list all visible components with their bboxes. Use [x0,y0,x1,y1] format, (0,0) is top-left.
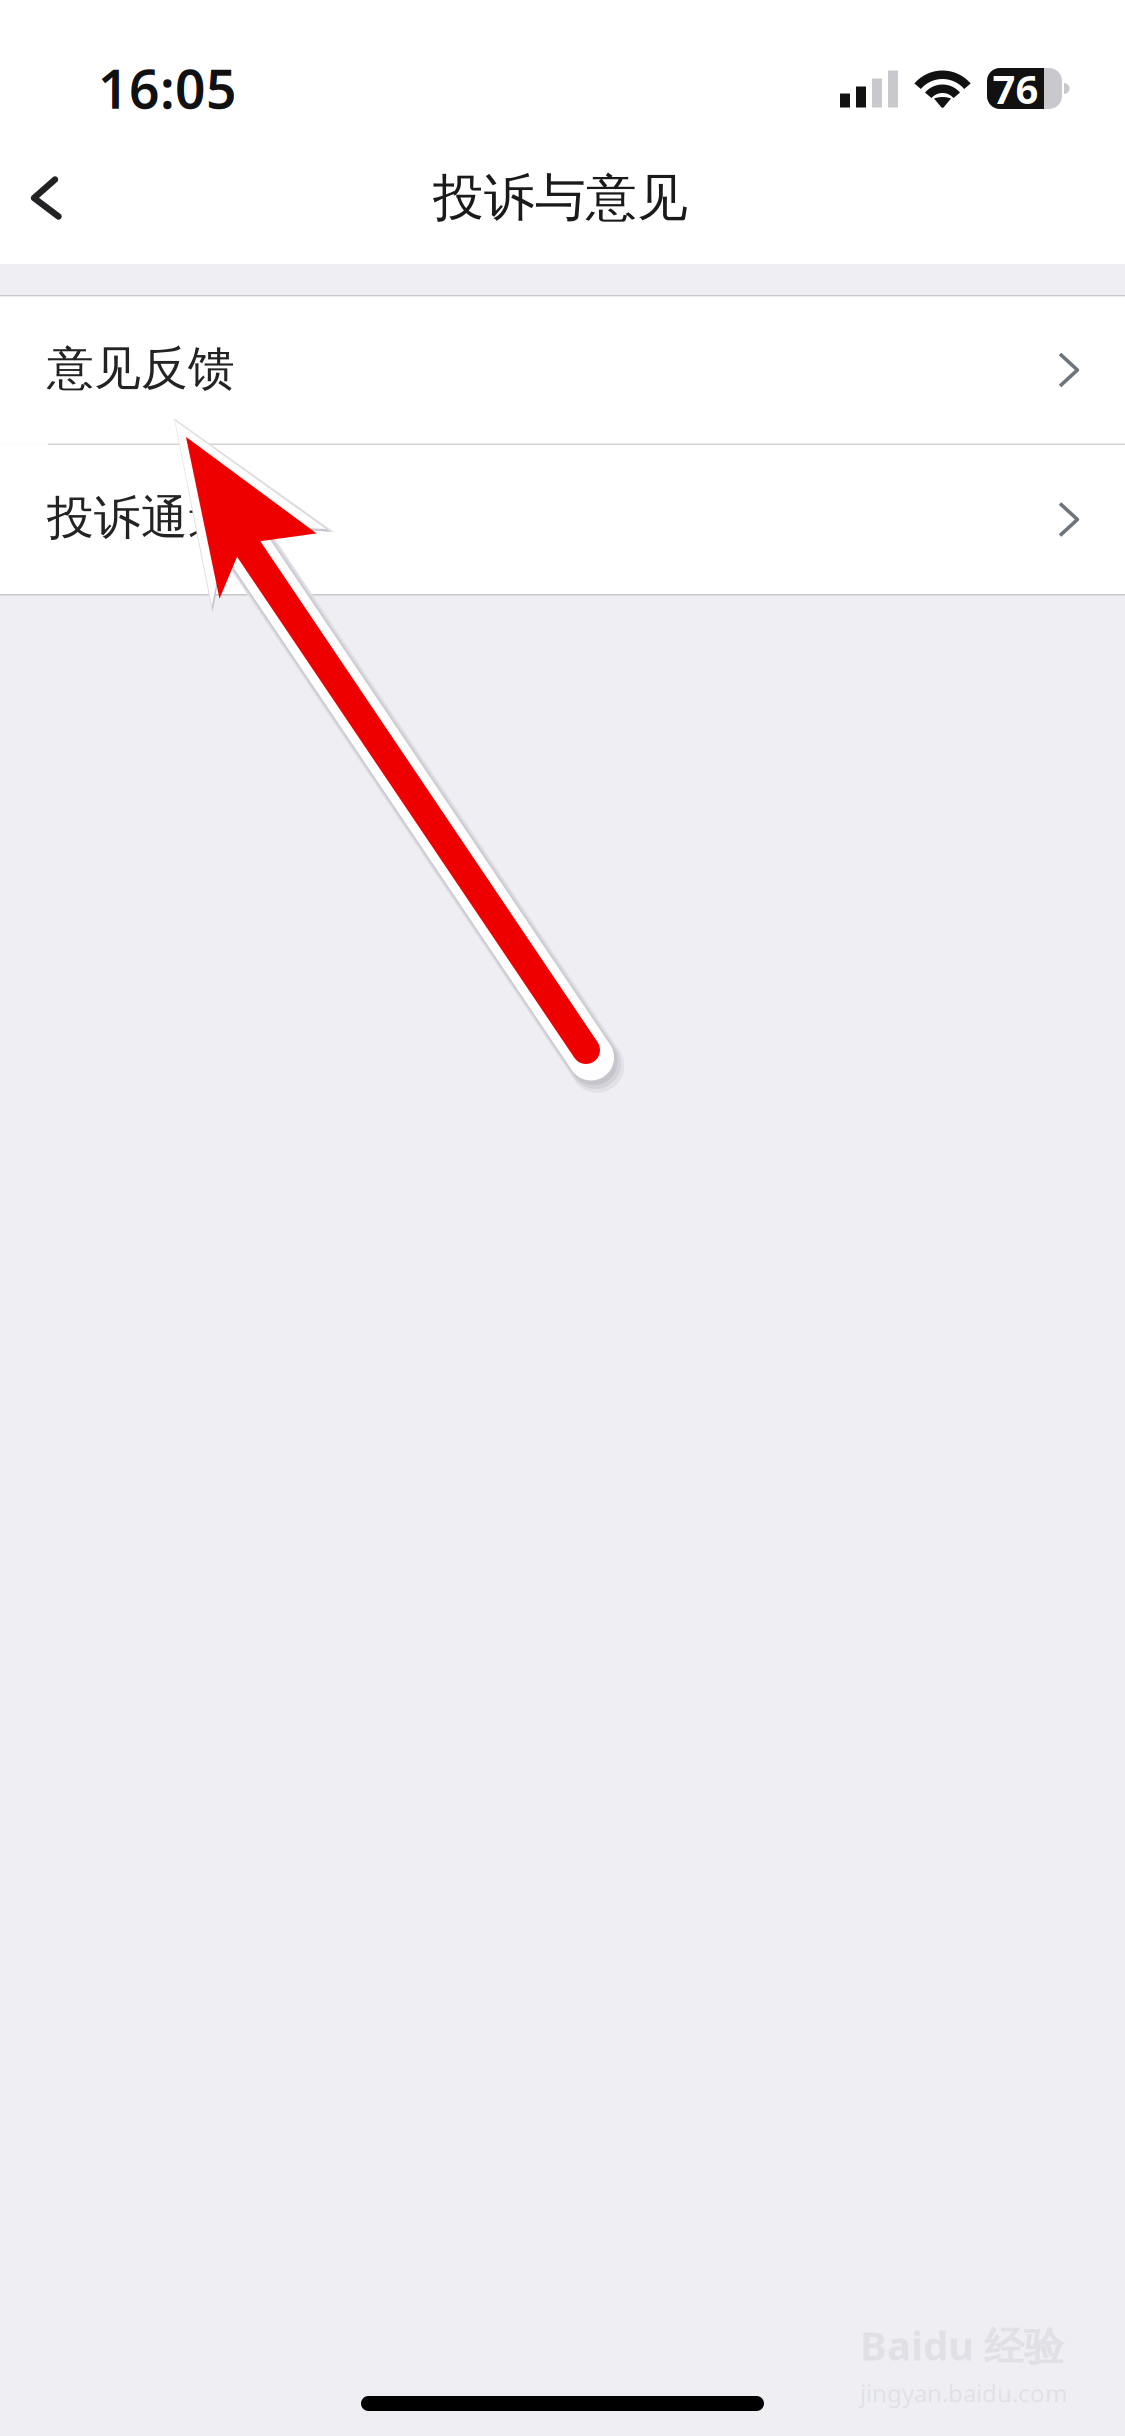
staticText: jingyan.baidu.com [860,2377,1067,2409]
button[interactable]: Back [0,132,100,264]
button[interactable]: 投诉通道 [0,445,1125,594]
button[interactable]: 意见反馈 [0,296,1125,443]
staticText: Baidu 经验 [860,2318,1064,2372]
staticText: 投诉通道 [47,489,235,547]
staticText: 意见反馈 [47,340,235,397]
staticText: 16:05 [98,53,237,123]
staticText: 76 [992,62,1038,115]
staticText: 投诉与意见 [433,167,688,229]
